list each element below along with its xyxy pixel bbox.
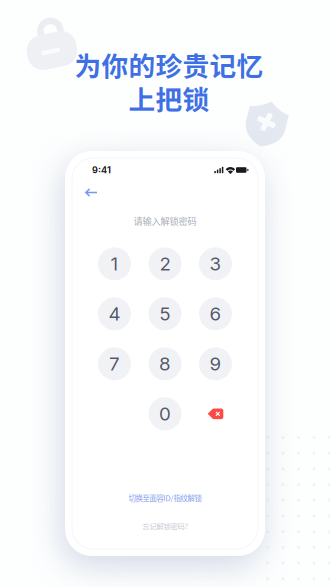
staticText: 切换至面容ID/指纹解锁 xyxy=(128,493,201,503)
button[interactable]: 2 xyxy=(148,247,181,280)
button[interactable]: 8 xyxy=(148,347,181,380)
staticText: 忘记解锁密码? xyxy=(142,520,187,531)
button[interactable]: 0 xyxy=(148,397,181,430)
button[interactable]: 5 xyxy=(148,297,181,330)
staticText: 请输入解锁密码 xyxy=(133,214,196,227)
staticText: 为你的珍贵记忆 xyxy=(74,45,263,84)
button[interactable]: 9 xyxy=(199,347,232,380)
button[interactable]: 7 xyxy=(98,347,131,380)
staticText: 7 xyxy=(109,352,120,375)
staticText: 9 xyxy=(209,352,221,375)
staticText: 上把锁 xyxy=(128,79,209,117)
staticText: 0 xyxy=(159,402,171,425)
button[interactable]: 忘记解锁密码? xyxy=(139,517,190,534)
button[interactable]: 4 xyxy=(98,297,131,330)
staticText: 3 xyxy=(209,252,221,275)
button[interactable]: 3 xyxy=(199,247,232,280)
staticText: 5 xyxy=(159,302,170,325)
button[interactable]: 1 xyxy=(98,247,131,280)
button[interactable]: Back xyxy=(80,183,102,201)
staticText: 6 xyxy=(209,302,221,325)
button[interactable]: 6 xyxy=(199,297,232,330)
staticText: 2 xyxy=(159,252,170,275)
staticText: 8 xyxy=(159,352,171,375)
staticText: 4 xyxy=(108,302,120,325)
staticText: 1 xyxy=(110,252,118,275)
staticText: 9:41 xyxy=(92,164,111,175)
button[interactable]: 切换至面容ID/指纹解锁 xyxy=(125,490,204,506)
button[interactable]: Delete xyxy=(199,397,232,430)
